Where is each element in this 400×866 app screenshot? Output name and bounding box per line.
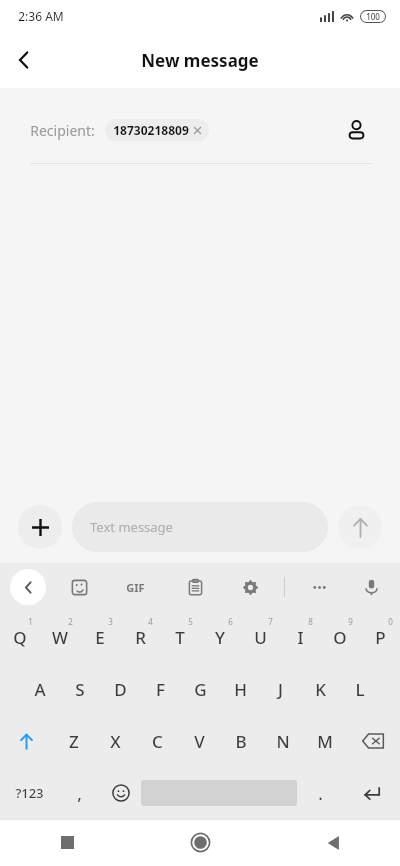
button[interactable]: P [360, 611, 400, 663]
staticText: Z [69, 730, 79, 753]
staticText: Text message [90, 518, 173, 536]
staticText: C [152, 730, 163, 753]
button[interactable]: Shift [0, 715, 53, 767]
button[interactable]: A [20, 663, 60, 715]
button[interactable]: . [297, 767, 343, 819]
button[interactable]: , [58, 767, 100, 819]
staticText: R [135, 626, 146, 649]
staticText: U [254, 626, 267, 649]
staticText: 4 [148, 616, 153, 627]
staticText: P [375, 626, 386, 649]
staticText: 1 [28, 616, 33, 627]
staticText: 2:36 AM [18, 8, 64, 24]
staticText: , [77, 782, 82, 805]
staticText: N [276, 730, 290, 753]
button[interactable]: V [178, 715, 220, 767]
staticText: 0 [388, 616, 393, 627]
button[interactable]: Enter [343, 767, 400, 819]
button[interactable]: Collapse toolbar [10, 569, 46, 605]
staticText: 8 [308, 616, 313, 627]
button[interactable]: Send [338, 505, 382, 549]
staticText: 7 [268, 616, 273, 627]
button[interactable]: Stickers [62, 570, 96, 604]
button[interactable]: C [136, 715, 178, 767]
button[interactable]: X [94, 715, 136, 767]
staticText: J [278, 678, 283, 701]
staticText: Recipient: [30, 121, 95, 140]
button[interactable]: R [120, 611, 160, 663]
button[interactable]: Home [134, 819, 267, 866]
button[interactable]: I [280, 611, 320, 663]
staticText: 2 [68, 616, 73, 627]
button[interactable]: N [262, 715, 304, 767]
staticText: T [175, 626, 185, 649]
button[interactable]: GIF [118, 570, 152, 604]
button[interactable]: B [220, 715, 262, 767]
button[interactable]: Settings [233, 570, 267, 604]
button[interactable]: Back [0, 36, 48, 84]
button[interactable]: G [180, 663, 220, 715]
button[interactable]: 18730218809 [105, 119, 209, 141]
staticText: M [317, 730, 333, 753]
button[interactable]: Recents [0, 819, 134, 866]
button[interactable]: K [300, 663, 340, 715]
staticText: F [156, 678, 165, 701]
button[interactable]: Backspace [346, 715, 400, 767]
staticText: D [114, 678, 127, 701]
button[interactable]: ?123 [0, 767, 58, 819]
button[interactable]: S [60, 663, 100, 715]
staticText: 6 [228, 616, 233, 627]
button[interactable]: U [240, 611, 280, 663]
button[interactable]: Add attachment [18, 505, 62, 549]
staticText: O [333, 626, 347, 649]
button[interactable]: W [40, 611, 80, 663]
staticText: 3 [108, 616, 113, 627]
staticText: G [194, 678, 207, 701]
staticText: I [297, 626, 304, 649]
button[interactable]: Back [267, 819, 400, 866]
button[interactable]: L [340, 663, 380, 715]
staticText: W [52, 626, 68, 649]
staticText: Q [13, 626, 27, 649]
button[interactable]: More options [302, 570, 336, 604]
staticText: GIF [126, 580, 145, 595]
button[interactable]: Emoji [100, 767, 141, 819]
button[interactable]: T [160, 611, 200, 663]
staticText: X [110, 730, 121, 753]
button[interactable]: E [80, 611, 120, 663]
button[interactable]: M [304, 715, 346, 767]
staticText: E [95, 626, 105, 649]
staticText: K [315, 678, 326, 701]
staticText: 100 [366, 11, 380, 22]
button[interactable]: Z [53, 715, 94, 767]
button[interactable]: Text message [72, 502, 328, 552]
button[interactable]: Voice input [354, 570, 388, 604]
staticText: B [235, 730, 247, 753]
staticText: 5 [188, 616, 193, 627]
staticText: S [75, 678, 85, 701]
staticText: Y [215, 626, 225, 649]
staticText: New message [141, 49, 259, 72]
staticText: 9 [348, 616, 353, 627]
button[interactable]: Q [0, 611, 40, 663]
button[interactable]: Contacts [336, 110, 376, 150]
staticText: L [355, 678, 365, 701]
button[interactable]: H [220, 663, 260, 715]
staticText: H [234, 678, 247, 701]
button[interactable]: O [320, 611, 360, 663]
button[interactable]: J [260, 663, 300, 715]
staticText: . [318, 782, 323, 805]
button[interactable]: D [100, 663, 140, 715]
staticText: A [34, 678, 46, 701]
button[interactable]: Y [200, 611, 240, 663]
button[interactable]: F [140, 663, 180, 715]
staticText: 18730218809 [113, 122, 189, 138]
button[interactable]: Clipboard [178, 570, 212, 604]
staticText: V [194, 730, 205, 753]
staticText: ?123 [15, 784, 44, 802]
